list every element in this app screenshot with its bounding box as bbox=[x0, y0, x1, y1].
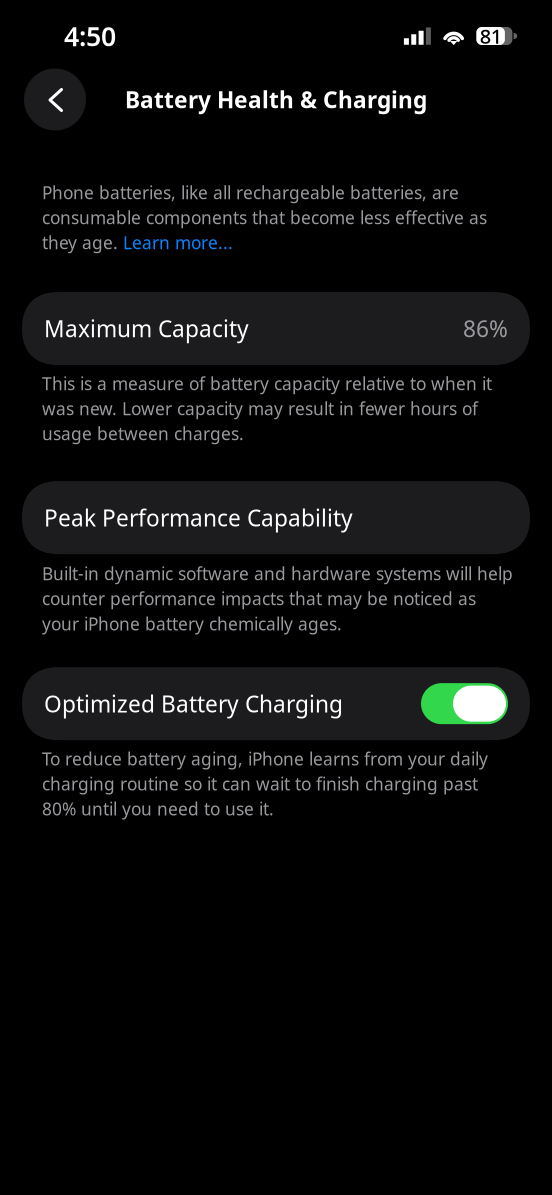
button[interactable]: Learn more... bbox=[123, 231, 233, 254]
staticText: consumable components that become less e… bbox=[42, 206, 487, 229]
staticText: usage between charges. bbox=[42, 422, 244, 445]
staticText: your iPhone battery chemically ages. bbox=[42, 612, 342, 635]
staticText: Optimized Battery Charging bbox=[44, 689, 343, 719]
staticText: To reduce battery aging, iPhone learns f… bbox=[42, 747, 488, 770]
staticText: 80% until you need to use it. bbox=[42, 797, 274, 820]
staticText: Battery Health & Charging bbox=[125, 84, 427, 114]
button[interactable]: Optimized Battery Charging bbox=[22, 667, 530, 740]
staticText: Maximum Capacity bbox=[44, 313, 249, 344]
staticText: was new. Lower capacity may result in fe… bbox=[42, 397, 478, 420]
staticText: Learn more... bbox=[123, 231, 233, 254]
staticText: Built-in dynamic software and hardware s… bbox=[42, 562, 513, 585]
staticText: 4:50 bbox=[64, 18, 116, 54]
button[interactable]: Peak Performance Capability bbox=[22, 481, 530, 554]
staticText: This is a measure of battery capacity re… bbox=[42, 372, 492, 395]
staticText: counter performance impacts that may be … bbox=[42, 587, 476, 610]
staticText: charging routine so it can wait to finis… bbox=[42, 772, 478, 795]
staticText: Phone batteries, like all rechargeable b… bbox=[42, 181, 459, 204]
staticText: 86% bbox=[463, 313, 508, 344]
staticText: 81 bbox=[480, 23, 502, 49]
staticText: Peak Performance Capability bbox=[44, 503, 353, 533]
button[interactable]: Maximum Capacity bbox=[22, 292, 530, 365]
staticText: they age. bbox=[42, 231, 123, 254]
button[interactable]: Back bbox=[24, 68, 86, 130]
